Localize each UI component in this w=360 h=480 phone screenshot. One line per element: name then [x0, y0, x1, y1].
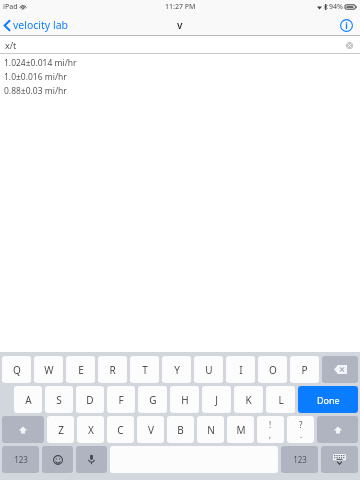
staticText: v	[177, 18, 183, 32]
button[interactable]: B	[167, 416, 194, 443]
button[interactable]: I	[226, 356, 255, 383]
staticText: 123	[293, 454, 307, 465]
button[interactable]: Z	[47, 416, 74, 443]
staticText: L	[278, 393, 284, 407]
staticText: T	[142, 363, 148, 377]
staticText: B	[177, 423, 184, 437]
staticText: .	[300, 429, 303, 440]
staticText: velocity lab	[13, 18, 68, 32]
button[interactable]: Dictation	[76, 446, 107, 473]
button[interactable]: V	[137, 416, 164, 443]
staticText: V	[148, 423, 154, 437]
button[interactable]: C	[107, 416, 134, 443]
staticText: x/t	[5, 39, 17, 51]
staticText: E	[78, 363, 84, 377]
button[interactable]: Done	[298, 386, 358, 413]
button[interactable]: S	[45, 386, 73, 413]
staticText: Y	[174, 363, 180, 377]
staticText: J	[215, 393, 218, 407]
staticText: 1.024±0.014 mi/hr	[4, 57, 77, 69]
staticText: K	[245, 393, 252, 407]
button[interactable]: U	[194, 356, 223, 383]
button[interactable]: W	[34, 356, 63, 383]
button[interactable]: H	[170, 386, 199, 413]
button[interactable]: D	[76, 386, 104, 413]
staticText: P	[301, 363, 308, 377]
staticText: 11:27 PM	[165, 2, 196, 12]
staticText: Z	[58, 423, 64, 437]
staticText: O	[269, 363, 277, 377]
staticText: iPad	[3, 2, 18, 12]
button[interactable]: 1.0±0.016 mi/hr	[0, 70, 360, 84]
staticText: D	[86, 393, 94, 407]
button[interactable]: Q	[2, 356, 31, 383]
staticText: N	[207, 423, 215, 437]
button[interactable]: L	[266, 386, 295, 413]
button[interactable]: J	[202, 386, 231, 413]
button[interactable]: Hide keyboard	[321, 446, 358, 473]
staticText: W	[44, 363, 54, 377]
button[interactable]: !	[257, 416, 284, 443]
button[interactable]: R	[98, 356, 127, 383]
staticText: !	[269, 419, 272, 430]
button[interactable]: G	[138, 386, 167, 413]
button[interactable]: Shift	[317, 416, 358, 443]
staticText: Done	[317, 394, 340, 406]
staticText: H	[181, 393, 189, 407]
button[interactable]: Info	[337, 16, 355, 34]
staticText: A	[25, 393, 32, 407]
staticText: Q	[13, 363, 21, 377]
button[interactable]: E	[66, 356, 95, 383]
button[interactable]: P	[290, 356, 319, 383]
staticText: 123	[14, 454, 28, 465]
button[interactable]: 0.88±0.03 mi/hr	[0, 84, 360, 98]
staticText: 94%	[329, 2, 343, 12]
staticText: ?	[299, 419, 303, 430]
staticText: 1.0±0.016 mi/hr	[4, 71, 67, 83]
button[interactable]: O	[258, 356, 287, 383]
button[interactable]: K	[234, 386, 263, 413]
staticText: F	[118, 393, 124, 407]
button[interactable]: Shift	[2, 416, 44, 443]
staticText: I	[239, 363, 243, 377]
staticText: ,	[269, 429, 272, 440]
button[interactable]: 1.024±0.014 mi/hr	[0, 56, 360, 70]
staticText: M	[236, 423, 246, 437]
staticText: C	[117, 423, 124, 437]
staticText: U	[205, 363, 213, 377]
button[interactable]: ?	[287, 416, 314, 443]
staticText: S	[56, 393, 62, 407]
button[interactable]: 123	[2, 446, 39, 473]
button[interactable]: F	[107, 386, 135, 413]
button[interactable]: T	[130, 356, 159, 383]
button[interactable]: Clear text	[343, 39, 355, 51]
button[interactable]: Backspace	[322, 356, 358, 383]
button[interactable]: x/t	[0, 36, 360, 54]
button[interactable]: 123	[281, 446, 318, 473]
staticText: 0.88±0.03 mi/hr	[4, 85, 67, 97]
button[interactable]: A	[14, 386, 42, 413]
staticText: G	[149, 393, 157, 407]
button[interactable]: Y	[162, 356, 191, 383]
button[interactable]: velocity lab	[0, 15, 74, 35]
button[interactable]: Emoji	[42, 446, 73, 473]
staticText: X	[88, 423, 94, 437]
button[interactable]: N	[197, 416, 224, 443]
staticText: R	[109, 363, 116, 377]
button[interactable]: X	[77, 416, 104, 443]
button[interactable]: M	[227, 416, 254, 443]
